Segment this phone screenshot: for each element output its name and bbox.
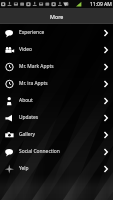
button[interactable]: Experience — [0, 24, 113, 41]
staticText: Video — [19, 46, 32, 53]
staticText: Updates — [19, 114, 39, 121]
staticText: Yelp — [19, 165, 29, 172]
staticText: Mr. ira Appts — [19, 80, 48, 87]
staticText: Social Connection — [19, 148, 60, 155]
button[interactable]: Social Connection — [0, 143, 113, 160]
button[interactable]: Gallery — [0, 126, 113, 143]
staticText: Gallery — [19, 131, 36, 138]
staticText: Mr. Mark Appts — [19, 63, 54, 70]
button[interactable]: Mr. Mark Appts — [0, 58, 113, 75]
button[interactable]: Yelp — [0, 160, 113, 177]
staticText: More — [50, 13, 64, 20]
button[interactable]: About — [0, 92, 113, 109]
button[interactable]: Mr. ira Appts — [0, 75, 113, 92]
button[interactable]: Video — [0, 41, 113, 58]
staticText: About — [19, 97, 33, 104]
staticText: 11:09 AM — [90, 1, 112, 8]
staticText: Experience — [19, 29, 45, 36]
button[interactable]: Updates — [0, 109, 113, 126]
